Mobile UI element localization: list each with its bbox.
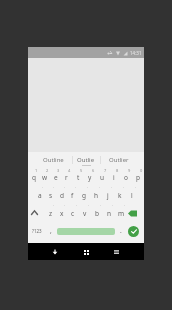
button[interactable]: c <box>67 204 79 222</box>
button[interactable]: Outlier <box>109 156 129 164</box>
button[interactable] <box>127 204 144 222</box>
staticText: ` <box>42 186 44 191</box>
button[interactable]: j <box>102 186 114 204</box>
button[interactable]: . <box>115 222 127 240</box>
button[interactable]: g <box>78 186 90 204</box>
staticText: v <box>83 209 87 218</box>
staticText: ` <box>75 186 77 191</box>
button[interactable]: Outlie <box>77 156 95 164</box>
button[interactable]: b <box>91 204 103 222</box>
button[interactable]: w <box>39 168 50 186</box>
button[interactable]: l <box>126 186 138 204</box>
staticText: n <box>107 209 112 218</box>
staticText: ` <box>124 204 126 209</box>
staticText: f <box>71 191 74 200</box>
staticText: ` <box>87 186 89 191</box>
staticText: x <box>60 209 64 218</box>
button[interactable]: q <box>28 168 39 186</box>
staticText: r <box>65 173 68 182</box>
button[interactable]: f <box>67 186 78 204</box>
staticText: 4 <box>68 168 71 173</box>
button[interactable]: y <box>84 168 96 186</box>
staticText: ` <box>111 186 113 191</box>
staticText: ` <box>100 204 102 209</box>
button[interactable] <box>57 228 115 235</box>
button[interactable]: m <box>115 204 127 222</box>
staticText: l <box>131 191 133 200</box>
button[interactable]: z <box>45 204 56 222</box>
button[interactable] <box>127 222 144 240</box>
button[interactable]: a <box>34 186 45 204</box>
button[interactable]: , <box>45 222 57 240</box>
button[interactable] <box>79 245 93 259</box>
button[interactable]: k <box>114 186 126 204</box>
button[interactable] <box>28 204 45 222</box>
staticText: 2 <box>46 168 49 173</box>
staticText: ` <box>53 186 55 191</box>
staticText: ` <box>123 186 125 191</box>
button[interactable]: x <box>56 204 67 222</box>
button[interactable]: e <box>50 168 61 186</box>
button[interactable] <box>109 245 123 259</box>
button[interactable]: d <box>56 186 67 204</box>
staticText: o <box>124 173 128 182</box>
button[interactable]: r <box>61 168 72 186</box>
staticText: ?123 <box>32 228 42 234</box>
staticText: e <box>54 173 58 182</box>
staticText: c <box>71 209 75 218</box>
staticText: 0 <box>140 168 143 173</box>
button[interactable]: n <box>103 204 115 222</box>
staticText: p <box>136 173 140 182</box>
staticText: 8 <box>116 168 119 173</box>
button[interactable]: s <box>45 186 56 204</box>
staticText: g <box>82 191 86 200</box>
staticText: i <box>113 173 115 182</box>
staticText: m <box>118 209 125 218</box>
staticText: ` <box>99 186 101 191</box>
button[interactable]: Outline <box>43 156 64 164</box>
button[interactable]: p <box>132 168 144 186</box>
staticText: . <box>120 226 122 235</box>
staticText: z <box>49 209 53 218</box>
staticText: j <box>107 191 109 200</box>
staticText: ` <box>135 186 137 191</box>
staticText: ` <box>53 204 55 209</box>
button[interactable] <box>48 245 62 259</box>
button[interactable]: i <box>108 168 120 186</box>
staticText: q <box>32 173 36 182</box>
staticText: y <box>88 173 92 182</box>
staticText: ` <box>64 186 66 191</box>
staticText: 6 <box>92 168 95 173</box>
staticText: d <box>60 191 64 200</box>
staticText: ` <box>88 204 90 209</box>
staticText: 1 <box>35 168 38 173</box>
staticText: 5 <box>80 168 83 173</box>
staticText: b <box>95 209 99 218</box>
button[interactable]: ?123 <box>28 222 45 240</box>
staticText: u <box>100 173 105 182</box>
staticText: ` <box>112 204 114 209</box>
button[interactable]: v <box>79 204 91 222</box>
staticText: 14:31 <box>130 50 142 56</box>
button[interactable]: u <box>96 168 108 186</box>
staticText: 3 <box>57 168 60 173</box>
staticText: k <box>118 191 122 200</box>
staticText: s <box>49 191 53 200</box>
button[interactable]: h <box>90 186 102 204</box>
button[interactable]: t <box>72 168 84 186</box>
staticText: , <box>50 226 52 235</box>
staticText: w <box>42 173 48 182</box>
staticText: ` <box>64 204 66 209</box>
staticText: h <box>94 191 99 200</box>
staticText: a <box>38 191 42 200</box>
button[interactable]: o <box>120 168 132 186</box>
staticText: ` <box>76 204 78 209</box>
staticText: 7 <box>104 168 107 173</box>
staticText: 9 <box>128 168 131 173</box>
staticText: t <box>77 173 80 182</box>
